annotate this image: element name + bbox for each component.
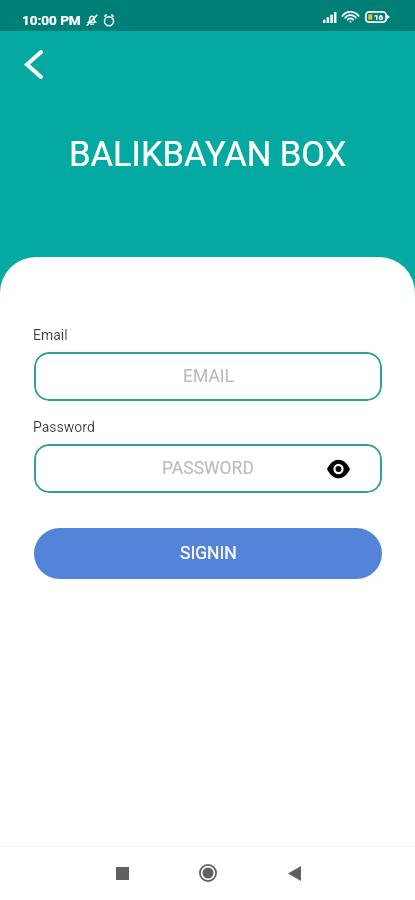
staticText: 16 <box>374 13 384 22</box>
button[interactable]: Back <box>12 42 56 86</box>
staticText: Email <box>33 327 68 343</box>
button[interactable]: SIGNIN <box>34 528 382 579</box>
button[interactable]: EMAIL <box>34 352 382 401</box>
button[interactable]: PASSWORD <box>34 444 382 493</box>
staticText: Password <box>33 419 95 435</box>
staticText: BALIKBAYAN BOX <box>69 134 347 174</box>
staticText: SIGNIN <box>180 543 237 564</box>
button[interactable]: Back <box>251 846 337 900</box>
staticText: 10:00 PM <box>22 12 81 28</box>
button[interactable]: Home <box>165 846 251 900</box>
button[interactable]: Show password <box>322 453 354 485</box>
staticText: EMAIL <box>183 366 234 387</box>
button[interactable]: Recent apps <box>79 846 165 900</box>
staticText: PASSWORD <box>162 458 254 479</box>
